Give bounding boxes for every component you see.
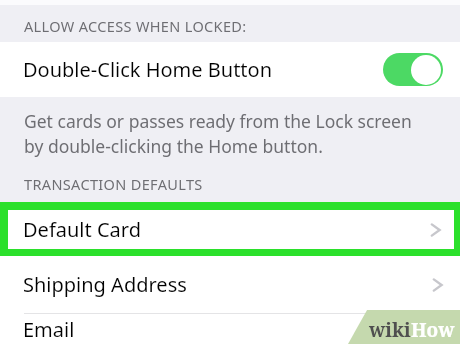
button[interactable]: Shipping Address	[0, 256, 460, 313]
staticText: Shipping Address	[23, 271, 187, 298]
staticText: Default Card	[23, 216, 141, 243]
staticText: ALLOW ACCESS WHEN LOCKED:	[24, 16, 247, 36]
staticText: Email	[23, 316, 75, 343]
button[interactable]: Email	[0, 314, 460, 344]
staticText: Get cards or passes ready from the Lock …	[24, 109, 426, 158]
button[interactable]: Double-Click Home Button	[0, 42, 460, 97]
staticText: Double-Click Home Button	[23, 56, 273, 83]
staticText: How	[411, 317, 455, 343]
staticText: TRANSACTION DEFAULTS	[24, 174, 203, 194]
button[interactable]: Double-Click Home Button toggle, on	[383, 53, 443, 86]
staticText: wiki	[369, 317, 411, 343]
button[interactable]: Default Card	[8, 210, 454, 249]
